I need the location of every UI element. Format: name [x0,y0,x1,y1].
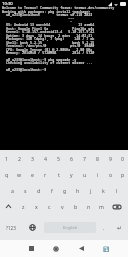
button[interactable]: Enter [111,215,128,240]
button[interactable]: Recents [22,240,40,257]
staticText: h [76,187,80,194]
staticText: o [109,171,113,178]
staticText: 10:30 [2,1,13,7]
staticText: Terminal: /dev/pts/0 pts/0 38400 [2,43,95,48]
staticText: a [11,187,14,194]
staticText: v [61,203,64,210]
staticText: . [103,224,105,231]
staticText: e [31,171,34,178]
staticText: Kernel: 5.10.157-android13-4 5.10.157-9.… [2,29,95,34]
button[interactable]: 0 [117,150,128,166]
staticText: w [17,171,22,178]
staticText: 9 [109,155,112,162]
staticText: 5 [57,155,60,162]
staticText: 8 [96,155,99,162]
button[interactable]: Hide keyboard [97,240,115,257]
staticText: d [37,187,41,194]
staticText: English [63,225,78,231]
button[interactable]: v [56,198,69,215]
button[interactable]: Backspace [108,198,125,215]
staticText: c [48,203,51,210]
button[interactable]: n [82,198,95,215]
staticText: g [63,187,67,194]
button[interactable]: l [110,182,123,198]
button[interactable]: 4 [39,150,52,166]
button[interactable]: i [91,166,104,182]
button[interactable]: 7 [78,150,91,166]
staticText: f [51,187,53,194]
staticText: ~~~ [2,16,75,21]
button[interactable]: 9 [104,150,117,166]
staticText: 1 [5,155,8,162]
staticText: 2 [18,155,21,162]
button[interactable]: x [30,198,43,215]
button[interactable]: a [6,182,19,198]
staticText: Uptime: 3 days, 14 hours, 2 mins 14:02:3… [2,33,93,38]
button[interactable]: j [84,182,97,198]
staticText: 3 [31,155,34,162]
button[interactable]: q [0,166,13,182]
staticText: x [35,203,38,210]
staticText: s [24,187,27,194]
button[interactable]: ?123 [0,215,22,240]
button[interactable]: f [45,182,58,198]
staticText: m [99,203,104,210]
button[interactable]: Change language [22,215,43,240]
staticText: ↵ [117,224,123,231]
button[interactable]: g [58,182,71,198]
button[interactable]: m [95,198,108,215]
staticText: i [97,171,99,178]
button[interactable]: u [78,166,91,182]
staticText: q [5,171,9,178]
button[interactable]: 8 [91,150,104,166]
staticText: 6 [70,155,73,162]
button[interactable]: k [97,182,110,198]
button[interactable]: p [117,166,128,182]
button[interactable]: w [13,166,26,182]
staticText: y [70,171,73,178]
button[interactable]: b [69,198,82,215]
button[interactable]: Back [72,240,90,257]
button[interactable]: d [32,182,45,198]
button[interactable]: t [52,166,65,182]
button[interactable]: c [43,198,56,215]
staticText: u0_a233@localhost termux v0.118 2023 [2,12,93,17]
staticText: Working with packages: pkg install <pack… [2,9,91,14]
staticText: l [116,187,118,194]
staticText: Shell: bash 5.2.15 bash 5.2.15 [2,40,95,45]
button[interactable]: Shift [0,198,17,215]
button[interactable]: 6 [65,150,78,166]
button[interactable]: 5 [52,150,65,166]
button[interactable]: Home [47,240,65,257]
button[interactable]: 1 [0,150,13,166]
staticText: n [87,203,91,210]
staticText: u0_a233@localhost:~$ pkg upgrade -y [2,57,77,62]
button[interactable]: s [19,182,32,198]
staticText: ⤵ [103,246,110,252]
staticText: 7 [83,155,86,162]
button[interactable]: e [26,166,39,182]
button[interactable]: z [17,198,30,215]
staticText: u0_a233@localhost:~$ [2,67,49,72]
button[interactable]: 2 [13,150,26,166]
staticText: 4 [44,155,47,162]
button[interactable]: r [39,166,52,182]
staticText: Host: Google Pixel 6a Pixel6a g4s [2,26,95,31]
staticText: p [121,171,125,178]
button[interactable]: 3 [26,150,39,166]
staticText: CPU: Google Tensor (8) @ 2.80GHz 2.80 GH… [2,47,93,52]
staticText: z [22,203,25,210]
staticText: ~ [2,19,73,24]
staticText: r [44,171,47,178]
staticText: j [90,187,92,194]
button[interactable]: o [104,166,117,182]
staticText: Packages: 148 (dpkg), 7 (pkg) 148 / 7 ok [2,36,95,41]
button[interactable]: English [44,222,96,233]
staticText: b [74,203,78,210]
staticText: u [83,171,87,178]
button[interactable]: y [65,166,78,182]
staticText: Memory: 2814MiB / 5720MiB 2814 / 5720 [2,50,95,55]
button[interactable]: h [71,182,84,198]
staticText: Welcome to Termux! Community forum: term… [2,5,115,10]
